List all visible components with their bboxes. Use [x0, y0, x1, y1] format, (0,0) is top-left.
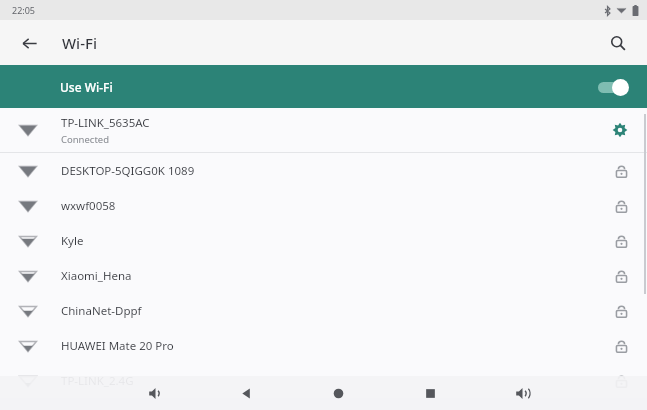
staticText: TP-LINK_2.4G: [61, 373, 134, 389]
button[interactable]: Secured network: [609, 334, 633, 358]
button[interactable]: Use Wi-Fi: [0, 65, 647, 108]
button[interactable]: Recents: [415, 378, 445, 408]
staticText: DESKTOP-5QIGG0K 1089: [61, 163, 195, 179]
button[interactable]: Secured network: [609, 264, 633, 288]
staticText: Connected: [61, 133, 110, 146]
staticText: Wi-Fi: [62, 33, 97, 53]
button[interactable]: Secured network: [609, 194, 633, 218]
staticText: Use Wi-Fi: [60, 79, 113, 95]
staticText: TP-LINK_5635AC: [61, 115, 150, 131]
button[interactable]: Home: [323, 378, 353, 408]
button[interactable]: Xiaomi_Hena: [0, 258, 647, 293]
button[interactable]: Search: [603, 28, 633, 58]
button[interactable]: ChinaNet-Dppf: [0, 293, 647, 328]
button[interactable]: Back: [231, 378, 261, 408]
button[interactable]: Volume up: [507, 378, 537, 408]
staticText: Xiaomi_Hena: [61, 268, 132, 284]
button[interactable]: wxwf0058: [0, 188, 647, 223]
button[interactable]: DESKTOP-5QIGG0K 1089: [0, 153, 647, 188]
button[interactable]: TP-LINK_5635AC: [0, 108, 647, 152]
button[interactable]: Settings: [607, 117, 633, 143]
staticText: HUAWEI Mate 20 Pro: [61, 338, 174, 354]
button[interactable]: Secured network: [609, 299, 633, 323]
button[interactable]: Secured network: [609, 229, 633, 253]
button[interactable]: Kyle: [0, 223, 647, 258]
staticText: Kyle: [61, 233, 84, 249]
button[interactable]: Back: [14, 28, 44, 58]
staticText: ChinaNet-Dppf: [61, 303, 142, 319]
staticText: 22:05: [12, 4, 36, 16]
button[interactable]: TP-LINK_2.4G: [0, 363, 647, 398]
button[interactable]: Secured network: [609, 159, 633, 183]
staticText: wxwf0058: [61, 198, 116, 214]
button[interactable]: HUAWEI Mate 20 Pro: [0, 328, 647, 363]
button[interactable]: Volume down: [140, 378, 170, 408]
button[interactable]: Secured network: [609, 369, 633, 393]
